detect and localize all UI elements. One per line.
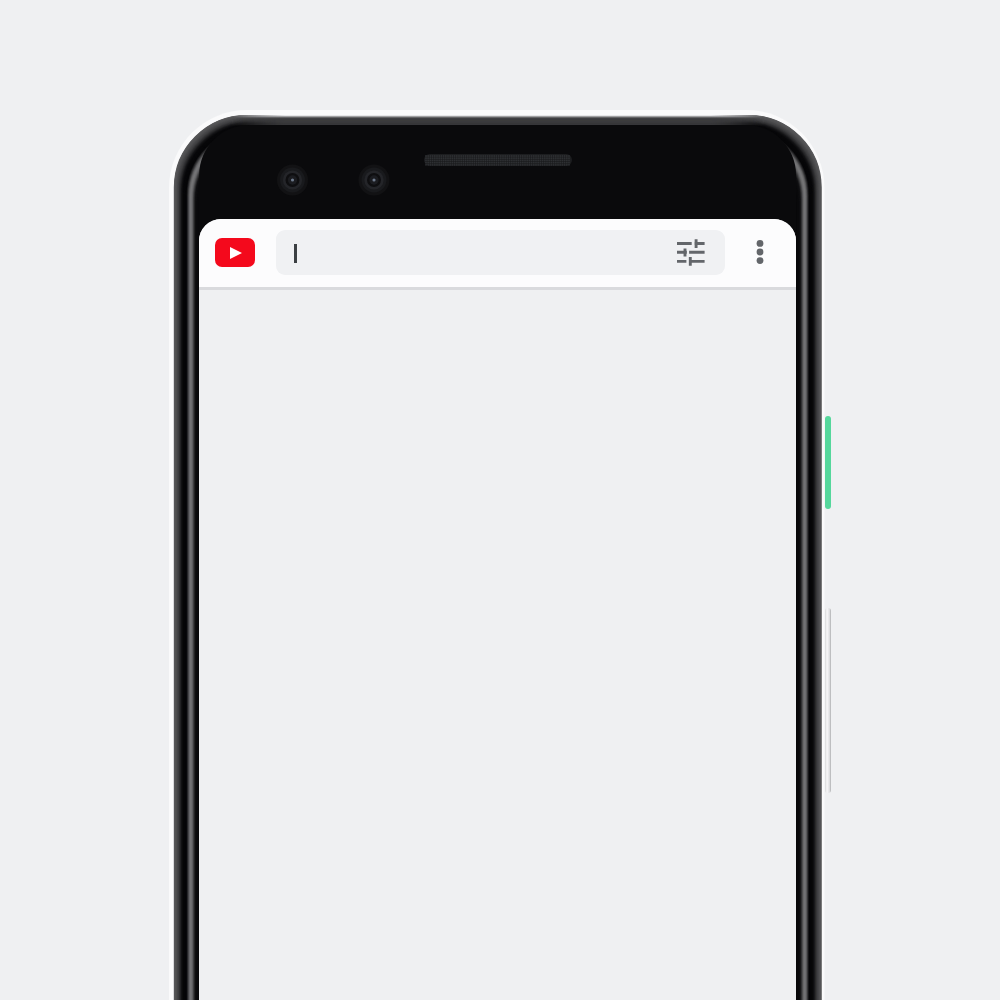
button[interactable]: Volume buttons <box>825 608 831 793</box>
button[interactable]: More options <box>739 231 781 273</box>
button[interactable]: Search <box>276 230 725 275</box>
button[interactable]: YouTube <box>215 238 255 267</box>
button[interactable]: Power button <box>825 416 831 509</box>
button[interactable]: Filters <box>671 233 711 273</box>
